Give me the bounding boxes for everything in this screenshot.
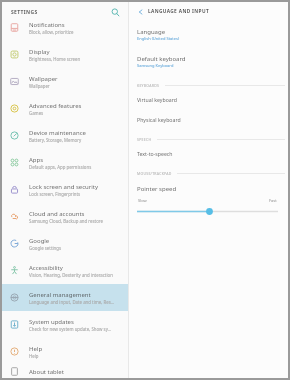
staticText: Lock screen and security — [29, 183, 98, 191]
button[interactable]: Default keyboard — [129, 48, 288, 75]
staticText: Google — [29, 237, 50, 245]
staticText: Default apps, App permissions — [29, 164, 92, 170]
staticText: Language and input, Date and time, Res..… — [29, 299, 115, 305]
staticText: Vision, Hearing, Dexterity and interacti… — [29, 272, 113, 278]
staticText: General management — [29, 291, 91, 299]
staticText: Wallpaper — [29, 83, 50, 89]
button[interactable]: Wallpaper — [2, 68, 128, 95]
button[interactable]: Virtual keyboard — [129, 89, 288, 109]
button[interactable]: System updates — [2, 311, 128, 338]
staticText: Samsung Keyboard — [137, 63, 174, 68]
staticText: KEYBOARDS — [137, 83, 160, 88]
staticText: MOUSE/TRACKPAD — [137, 171, 172, 176]
staticText: Physical keyboard — [137, 116, 181, 123]
staticText: About tablet — [29, 368, 64, 376]
staticText: Language — [137, 28, 166, 36]
button[interactable]: Accessibility — [2, 257, 128, 284]
staticText: Default keyboard — [137, 55, 186, 63]
button[interactable]: Device maintenance — [2, 122, 128, 149]
staticText: Device maintenance — [29, 129, 86, 137]
staticText: Google settings — [29, 245, 62, 251]
button[interactable]: Advanced features — [2, 95, 128, 122]
staticText: Brightness, Home screen — [29, 56, 81, 62]
staticText: Check for new system update, Show sy... — [29, 326, 112, 332]
button[interactable]: Text-to-speech — [129, 143, 288, 163]
staticText: Slow — [138, 198, 147, 203]
staticText: Block, allow, prioritize — [29, 29, 74, 35]
staticText: English (United States) — [137, 36, 180, 41]
button[interactable]: Back — [135, 6, 146, 17]
staticText: Virtual keyboard — [137, 96, 177, 103]
staticText: Advanced features — [29, 102, 82, 110]
staticText: Display — [29, 48, 50, 56]
button[interactable]: Language — [129, 21, 288, 48]
staticText: Cloud and accounts — [29, 210, 85, 218]
staticText: Notifications — [29, 21, 65, 29]
staticText: LANGUAGE AND INPUT — [148, 8, 209, 15]
staticText: SPEECH — [137, 137, 152, 142]
button[interactable]: Display — [2, 41, 128, 68]
staticText: Help — [29, 353, 39, 359]
staticText: Help — [29, 345, 43, 353]
button[interactable]: Google — [2, 230, 128, 257]
button[interactable]: Apps — [2, 149, 128, 176]
button[interactable]: Notifications — [2, 14, 128, 41]
staticText: System updates — [29, 318, 74, 326]
staticText: Lock screen, Fingerprints — [29, 191, 81, 197]
button[interactable]: Cloud and accounts — [2, 203, 128, 230]
button[interactable]: Help — [2, 338, 128, 365]
button[interactable]: Physical keyboard — [129, 109, 288, 129]
staticText: Samsung Cloud, Backup and restore — [29, 218, 103, 224]
button[interactable]: Search — [109, 6, 121, 18]
staticText: Accessibility — [29, 264, 63, 272]
staticText: Battery, Storage, Memory — [29, 137, 82, 143]
staticText: Apps — [29, 156, 44, 164]
staticText: Text-to-speech — [137, 150, 173, 157]
staticText: Pointer speed — [137, 185, 177, 193]
staticText: Fast — [269, 198, 277, 203]
button[interactable]: Lock screen and security — [2, 176, 128, 203]
staticText: Wallpaper — [29, 75, 58, 83]
staticText: SETTINGS — [11, 9, 38, 16]
staticText: Games — [29, 110, 44, 116]
button[interactable]: General management — [2, 284, 128, 311]
button[interactable]: About tablet — [2, 365, 128, 378]
